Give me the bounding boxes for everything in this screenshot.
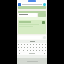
button[interactable] (38, 49, 41, 52)
button[interactable] (26, 43, 29, 46)
button[interactable]: Back (18, 3, 21, 6)
button[interactable] (29, 46, 32, 49)
button[interactable] (32, 46, 35, 49)
button[interactable] (32, 49, 35, 52)
button[interactable] (18, 13, 37, 17)
button[interactable] (20, 46, 23, 49)
button[interactable] (42, 52, 47, 55)
button[interactable] (17, 52, 21, 55)
button[interactable] (41, 43, 44, 46)
button[interactable] (29, 49, 32, 52)
button[interactable] (26, 46, 29, 49)
button[interactable] (20, 43, 23, 46)
button[interactable] (41, 49, 44, 52)
button[interactable] (17, 49, 21, 52)
button[interactable] (38, 46, 41, 49)
button[interactable] (23, 43, 26, 46)
button[interactable] (35, 49, 38, 52)
button[interactable] (18, 20, 46, 34)
button[interactable] (21, 49, 25, 52)
button[interactable] (17, 43, 20, 46)
button[interactable] (32, 43, 35, 46)
button[interactable] (23, 46, 26, 49)
button[interactable]: Send (43, 36, 46, 39)
button[interactable] (44, 49, 47, 52)
button[interactable] (38, 43, 41, 46)
button[interactable] (29, 43, 32, 46)
button[interactable] (35, 43, 38, 46)
button[interactable] (17, 46, 20, 49)
button[interactable]: Profile (43, 3, 46, 6)
button[interactable] (44, 46, 47, 49)
button[interactable] (25, 49, 29, 52)
button[interactable] (44, 43, 47, 46)
button[interactable] (24, 52, 39, 55)
button[interactable] (35, 46, 38, 49)
button[interactable] (41, 46, 44, 49)
